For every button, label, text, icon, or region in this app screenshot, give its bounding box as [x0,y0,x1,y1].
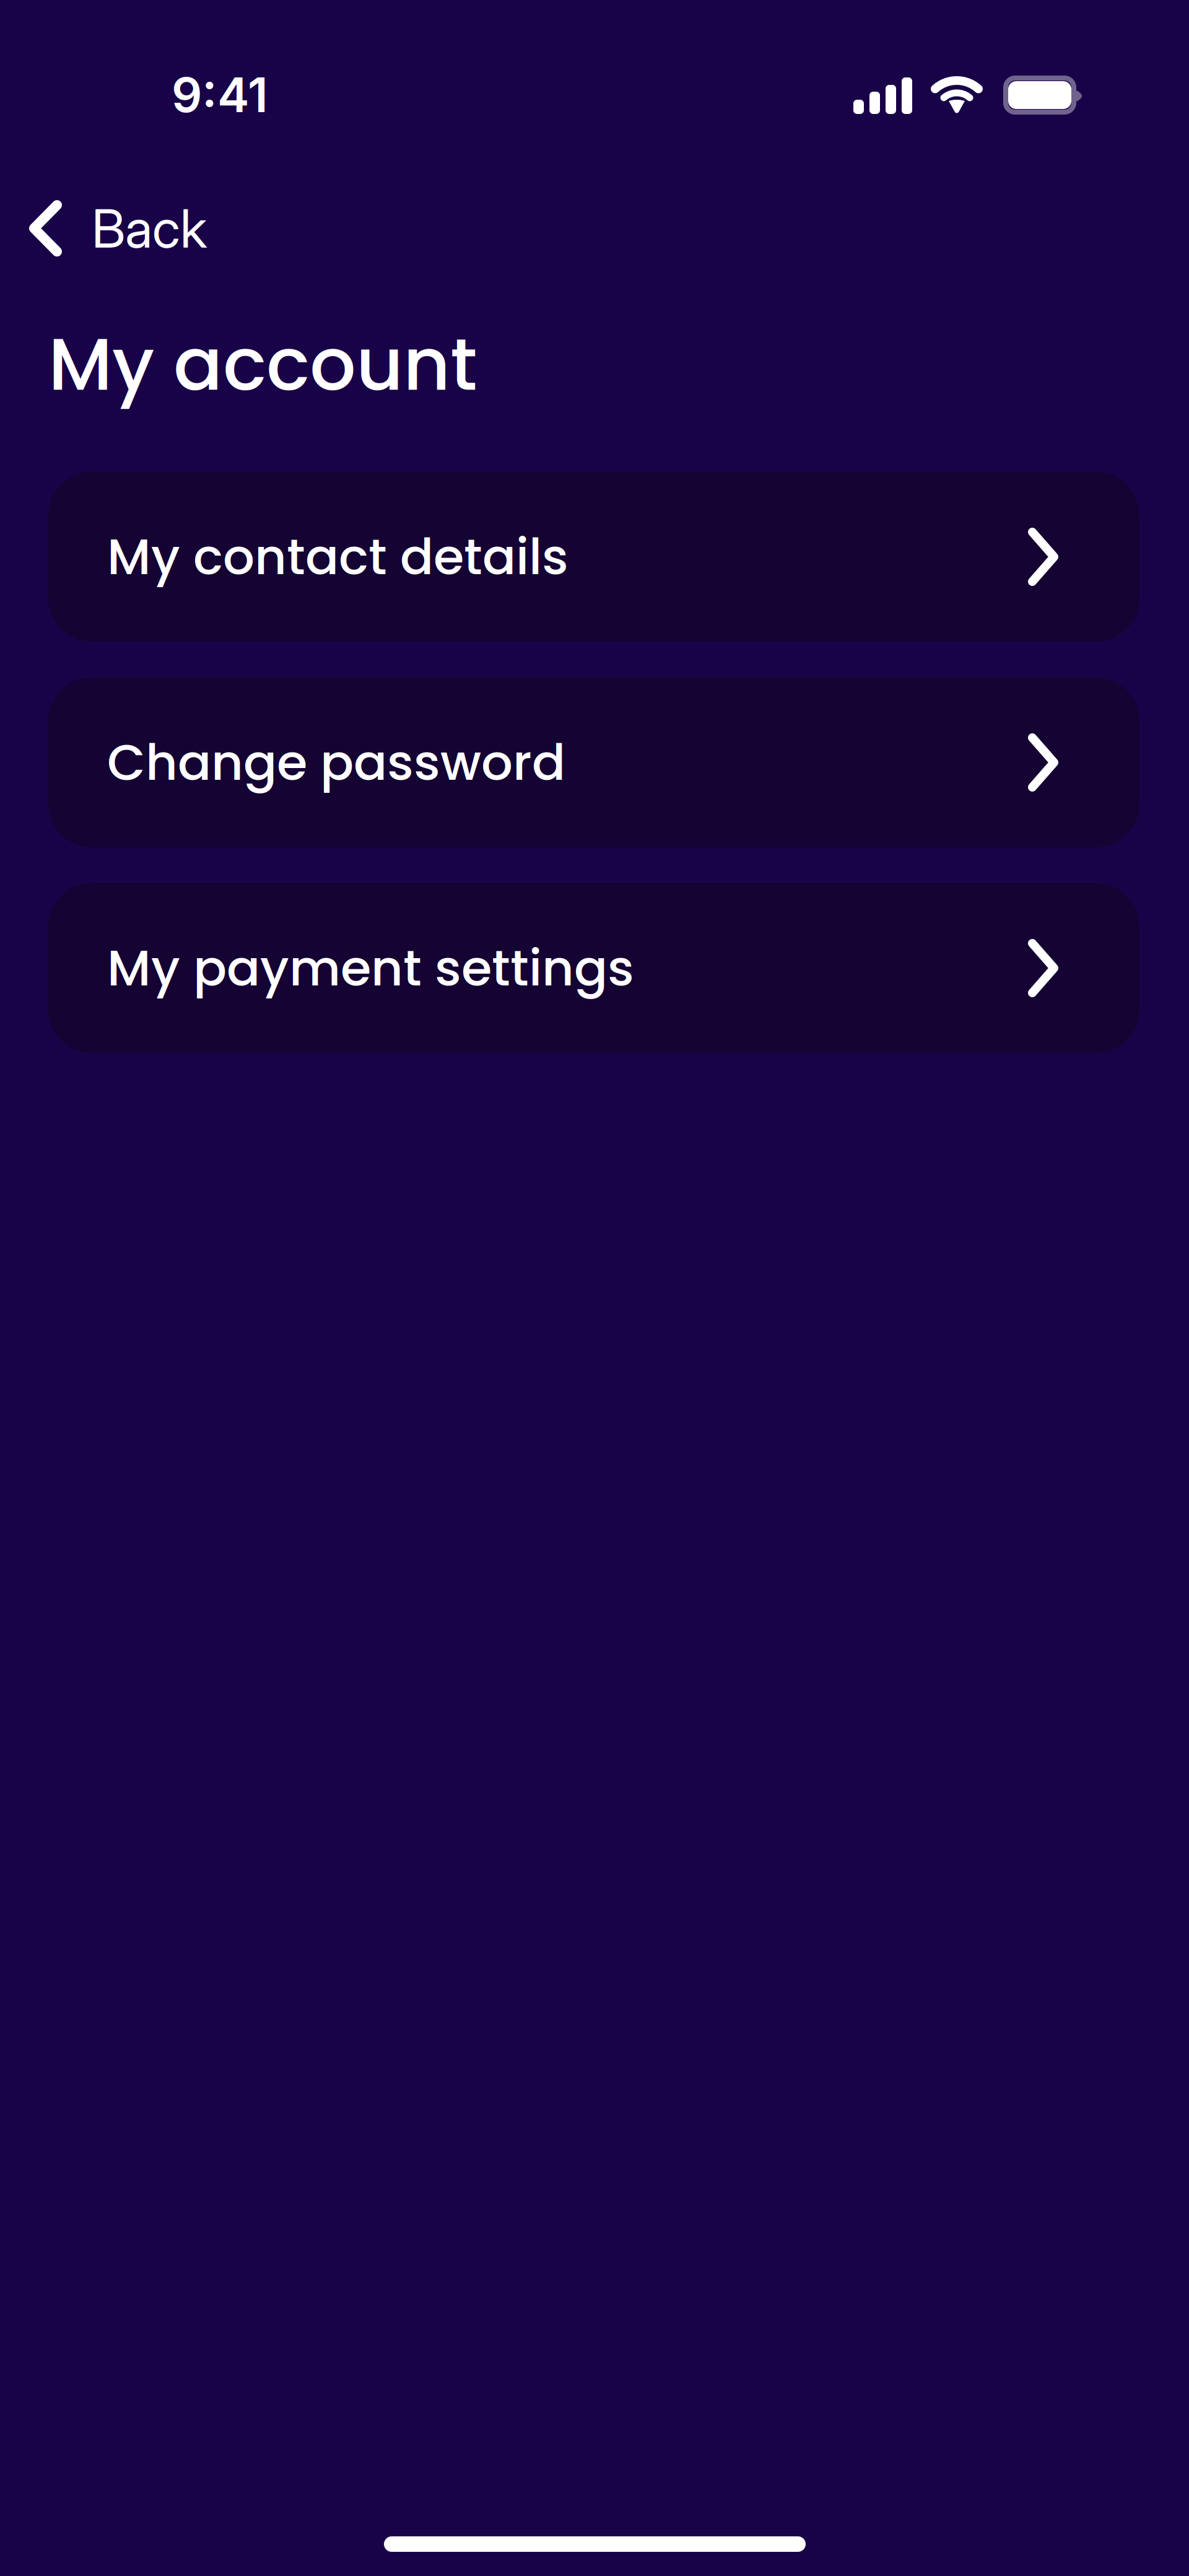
button[interactable]: Back [0,181,232,275]
staticText: My payment settings [107,933,634,1003]
button[interactable]: My contact details [48,472,1139,642]
button[interactable]: My payment settings [48,883,1139,1053]
staticText: My account [48,313,477,415]
staticText: Back [92,196,207,260]
staticText: Change password [107,728,565,797]
staticText: 9:41 [172,66,268,124]
staticText: My contact details [107,522,568,592]
button[interactable]: Change password [48,678,1139,847]
